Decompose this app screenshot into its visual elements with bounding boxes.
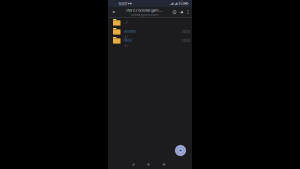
staticText: ../ <box>124 19 127 25</box>
button[interactable]: More options <box>185 7 191 17</box>
button[interactable]: Recents <box>126 160 141 169</box>
button[interactable]: assets/ <box>108 28 192 37</box>
button[interactable]: Back <box>156 160 171 169</box>
staticText: assets/ <box>124 28 136 34</box>
staticText: 2024 <box>182 29 190 34</box>
staticText: 4G <box>178 1 182 5</box>
staticText: dir <box>124 34 128 38</box>
button[interactable]: Page info <box>171 7 178 17</box>
button[interactable]: Forward <box>178 7 185 17</box>
button[interactable]: ../ <box>108 19 192 28</box>
staticText: 2024 <box>182 38 190 43</box>
staticText: dir <box>124 43 128 47</box>
staticText: ✕ <box>112 10 115 15</box>
button[interactable]: Close <box>109 7 118 17</box>
staticText: rockstargames.com <box>130 13 158 17</box>
button[interactable]: Home <box>141 160 156 169</box>
staticText: 10:07 <box>118 1 127 6</box>
staticText: files/ <box>124 37 132 43</box>
staticText: store.rockstargames… <box>126 7 163 13</box>
button[interactable]: Scroll to top <box>174 144 187 157</box>
button[interactable]: files/ <box>108 37 192 46</box>
